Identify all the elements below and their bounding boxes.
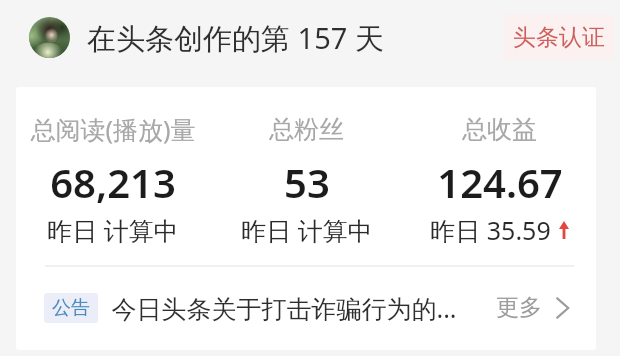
staticText: 在头条创作的第 157 天 <box>87 18 384 58</box>
staticText: 124.67 <box>437 155 563 207</box>
staticText: 公告 <box>52 296 90 320</box>
staticText: 更多 <box>496 293 542 322</box>
button[interactable]: 头条认证 <box>504 14 614 61</box>
staticText: 总粉丝 <box>269 114 344 145</box>
other: More announcements <box>555 297 570 319</box>
staticText: 昨日 35.59 <box>430 213 551 247</box>
button[interactable]: 更多 <box>496 266 570 349</box>
staticText: 总收益 <box>462 114 537 145</box>
button[interactable]: Profile avatar <box>29 17 70 58</box>
staticText: 今日头条关于打击诈骗行为的... <box>111 291 457 325</box>
staticText: 68,213 <box>50 155 176 207</box>
button[interactable]: 总阅读(播放)量 <box>16 87 210 265</box>
staticText: 头条认证 <box>513 23 605 52</box>
staticText: 总阅读(播放)量 <box>30 112 196 146</box>
staticText: 昨日 计算中 <box>241 213 373 247</box>
button[interactable]: 总收益 <box>403 87 596 265</box>
staticText: 昨日 计算中 <box>47 213 179 247</box>
button[interactable]: 总粉丝 <box>210 87 403 265</box>
staticText: 53 <box>284 155 330 207</box>
button[interactable]: 公告 <box>16 267 596 350</box>
